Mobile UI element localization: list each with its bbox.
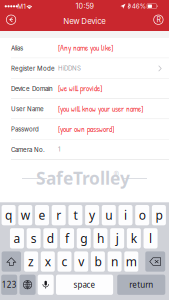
staticText: n (111, 254, 118, 269)
staticText: Device Domain (11, 85, 53, 92)
button[interactable]: Device Domain (0, 0, 169, 300)
staticText: e (38, 207, 45, 223)
staticText: p (155, 207, 162, 223)
staticText: r (56, 207, 61, 223)
staticText: 10:59 (75, 2, 93, 10)
staticText: w (21, 207, 30, 223)
button[interactable]: x (41, 251, 55, 272)
staticText: m (126, 254, 137, 269)
button[interactable]: User Name (0, 0, 169, 300)
staticText: Password (11, 126, 39, 133)
staticText: z (28, 254, 34, 269)
staticText: HiDDNS (58, 64, 81, 72)
button[interactable]: return (117, 275, 165, 295)
button[interactable]: Alias (0, 0, 169, 300)
button[interactable]: r (52, 205, 66, 225)
button[interactable]: j (110, 228, 124, 248)
staticText: d (47, 230, 54, 246)
button[interactable]: d (43, 228, 57, 248)
staticText: SafeTrolley (36, 166, 130, 189)
staticText: v (78, 254, 84, 269)
button[interactable]: g (77, 228, 91, 248)
staticText: [you will know your user name] (58, 103, 143, 114)
staticText: 123 (2, 279, 17, 290)
button[interactable]: 123 (1, 275, 17, 295)
button[interactable]: m (124, 251, 138, 272)
staticText: Register Mode (11, 65, 55, 72)
button[interactable]: Delete (145, 251, 165, 272)
button[interactable]: f (60, 228, 74, 248)
staticText: j (116, 230, 119, 246)
button[interactable]: Register Mode (0, 0, 169, 300)
staticText: y (89, 207, 95, 223)
staticText: q (5, 207, 12, 223)
staticText: t (73, 207, 77, 223)
button[interactable]: Camera No. (0, 0, 169, 300)
button[interactable]: n (108, 251, 122, 272)
staticText: [we will provide] (58, 83, 102, 94)
staticText: 1 (58, 146, 60, 153)
staticText: h (97, 230, 104, 246)
button[interactable]: l (143, 228, 157, 248)
button[interactable]: space (56, 275, 113, 295)
button[interactable]: u (102, 205, 116, 225)
staticText: R (156, 15, 160, 24)
button[interactable]: Shift (2, 251, 21, 272)
button[interactable]: t (68, 205, 82, 225)
staticText: New Device (63, 16, 106, 26)
staticText: u (105, 207, 112, 223)
button[interactable]: a (10, 228, 24, 248)
button[interactable]: s (27, 228, 41, 248)
button[interactable]: z (24, 251, 38, 272)
staticText: f (65, 230, 69, 246)
button[interactable]: y (85, 205, 99, 225)
button[interactable]: e (35, 205, 49, 225)
button[interactable]: o (135, 205, 149, 225)
button[interactable]: h (93, 228, 107, 248)
button[interactable]: Dictation (38, 275, 54, 295)
staticText: i (124, 207, 127, 223)
button[interactable]: q (2, 205, 16, 225)
staticText: x (45, 254, 51, 269)
staticText: s (31, 230, 37, 246)
staticText: Camera No. (11, 146, 45, 153)
button[interactable]: v (74, 251, 88, 272)
staticText: o (139, 207, 146, 223)
button[interactable]: i (118, 205, 132, 225)
button[interactable]: Next keyboard (19, 275, 36, 295)
staticText: a (13, 230, 20, 246)
button[interactable]: c (57, 251, 71, 272)
staticText: c (61, 254, 67, 269)
button[interactable]: Back (1, 11, 21, 29)
staticText: return (129, 279, 153, 290)
button[interactable]: Register (148, 11, 168, 29)
button[interactable]: k (127, 228, 141, 248)
staticText: space (73, 279, 95, 290)
staticText: g (80, 230, 87, 246)
staticText: ® (113, 170, 119, 178)
button[interactable]: b (91, 251, 105, 272)
staticText: User Name (11, 105, 44, 113)
button[interactable]: w (18, 205, 32, 225)
staticText: 46% (132, 2, 146, 10)
staticText: Alias (11, 44, 23, 52)
staticText: k (131, 230, 137, 246)
staticText: M1 (17, 2, 26, 10)
staticText: b (94, 254, 101, 269)
button[interactable]: p (152, 205, 166, 225)
staticText: [Any name you like] (58, 42, 113, 53)
button[interactable]: Password (0, 0, 169, 300)
staticText: l (149, 230, 152, 246)
staticText: [your own password] (58, 124, 114, 134)
